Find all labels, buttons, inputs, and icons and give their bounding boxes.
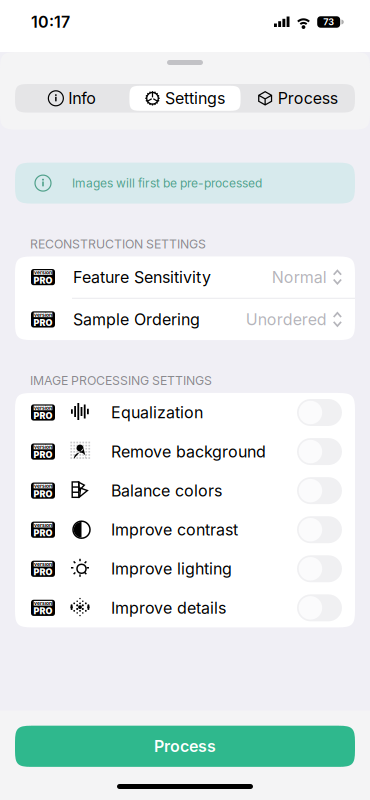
staticText: PRO [33, 606, 52, 617]
staticText: Feature Sensitivity [73, 267, 211, 287]
staticText: Info [68, 89, 96, 108]
staticText: Sample Ordering [73, 310, 200, 329]
button[interactable]: version [15, 432, 355, 471]
staticText: version [34, 312, 52, 318]
staticText: Remove background [111, 442, 266, 461]
button[interactable]: version [15, 588, 355, 627]
staticText: Process [278, 89, 338, 108]
staticText: PRO [33, 317, 52, 328]
staticText: version [34, 483, 52, 489]
button[interactable]: version [15, 471, 355, 510]
staticText: IMAGE PROCESSING SETTINGS [30, 373, 212, 388]
button[interactable]: version [15, 393, 355, 432]
staticText: Balance colors [111, 481, 222, 500]
staticText: 10:17 [31, 12, 70, 32]
button[interactable]: Process [15, 726, 355, 767]
staticText: version [34, 269, 52, 275]
staticText: PRO [33, 275, 52, 286]
staticText: version [34, 600, 52, 606]
button[interactable]: Settings [129, 86, 240, 111]
staticText: Equalization [111, 403, 203, 422]
staticText: Normal [272, 267, 327, 287]
staticText: version [34, 405, 52, 411]
button[interactable]: version [15, 510, 355, 549]
staticText: version [34, 561, 52, 567]
staticText: PRO [33, 410, 52, 421]
staticText: PRO [33, 449, 52, 460]
button[interactable]: version [15, 549, 355, 588]
staticText: version [34, 444, 52, 450]
staticText: PRO [33, 488, 52, 499]
button[interactable]: version [15, 299, 355, 340]
staticText: Process [154, 737, 216, 756]
button[interactable]: Info [17, 86, 128, 111]
staticText: Improve lighting [111, 559, 232, 578]
staticText: Improve contrast [111, 520, 238, 539]
button[interactable]: version [15, 256, 355, 298]
staticText: version [34, 522, 52, 528]
staticText: Improve details [111, 598, 226, 618]
button[interactable]: Process [242, 86, 353, 111]
staticText: Settings [165, 89, 225, 108]
staticText: Images will first be pre-processed [72, 176, 262, 190]
staticText: PRO [33, 527, 52, 538]
staticText: Unordered [246, 310, 327, 329]
staticText: PRO [33, 567, 52, 577]
staticText: 73 [323, 17, 334, 27]
staticText: RECONSTRUCTION SETTINGS [30, 237, 206, 251]
